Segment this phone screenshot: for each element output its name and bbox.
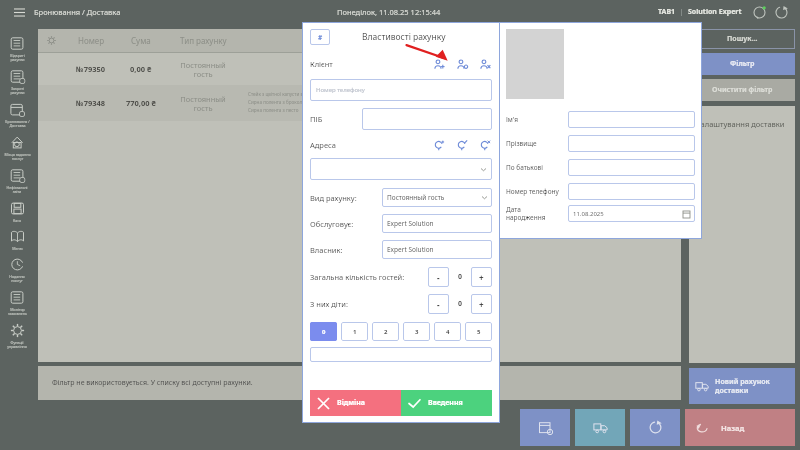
staticText: #	[318, 33, 323, 42]
button[interactable]: Відміна	[310, 390, 401, 416]
button[interactable]: Надання послуг	[0, 254, 34, 287]
button[interactable]: №79348	[38, 85, 681, 121]
staticText: Каса	[13, 218, 21, 223]
staticText: Обслуговує:	[310, 219, 382, 229]
button[interactable]: Очистити фільтр	[689, 79, 795, 101]
button[interactable]: Delivery	[575, 409, 625, 446]
button[interactable]: Menu	[10, 3, 28, 21]
staticText: Стейк з цвітної капусти в кокосовому соу…	[248, 91, 667, 97]
staticText: Введення	[428, 398, 463, 408]
staticText: ПІБ	[310, 114, 362, 124]
button[interactable]: №79350	[38, 53, 681, 85]
button[interactable]: Закриті рахунки	[0, 66, 34, 99]
button[interactable]: Remove address	[479, 139, 492, 152]
staticText: 4	[446, 328, 450, 336]
staticText: Номер	[78, 35, 105, 46]
button[interactable]: Add client	[433, 58, 446, 71]
staticText: Дата народження	[506, 205, 568, 222]
button[interactable]	[310, 158, 492, 180]
button[interactable]	[362, 108, 492, 130]
button[interactable]: Expert Solution	[382, 240, 492, 259]
staticText: Номер телефону	[316, 86, 365, 94]
button[interactable]: Відкриті рахунки	[0, 33, 34, 66]
staticText: -	[437, 272, 440, 283]
button[interactable]: Refresh	[772, 3, 790, 21]
staticText: 0	[322, 328, 326, 336]
staticText: Expert Solution	[387, 219, 434, 228]
button[interactable]: Edit address	[456, 139, 469, 152]
button[interactable]: Монітор замовлень	[0, 287, 34, 320]
staticText: Надання послуг	[9, 274, 25, 284]
button[interactable]: Новий рахунок доставки	[689, 368, 795, 404]
button[interactable]: -	[428, 294, 449, 314]
staticText: 11.08.2025	[573, 210, 604, 218]
button[interactable]: -	[428, 267, 449, 287]
staticText: Новий рахунок доставки	[715, 377, 770, 395]
staticText: +	[479, 272, 484, 283]
staticText: +	[479, 299, 484, 310]
button[interactable]: Бронювання / Доставка	[0, 99, 34, 132]
button[interactable]: Введення	[401, 390, 492, 416]
button[interactable]: Номер телефону	[310, 79, 492, 101]
staticText: Очистити фільтр	[712, 85, 773, 95]
staticText: Сирна полента з броколіні,песто та яйцем…	[248, 99, 667, 105]
staticText: 770,00 ₴	[126, 98, 156, 108]
button[interactable]: Remove client	[479, 58, 492, 71]
staticText: З них діти:	[310, 299, 428, 309]
staticText: По батькові	[506, 163, 568, 172]
button[interactable]: Постоянный гость	[382, 188, 492, 207]
button[interactable]: Пошук...	[689, 29, 795, 49]
button[interactable]: Edit client	[456, 58, 469, 71]
staticText: Понеділок, 11.08.25 12:15:44	[337, 7, 441, 17]
staticText: 0	[458, 272, 463, 282]
button[interactable]: Налаштування доставки	[689, 106, 795, 363]
button[interactable]: Назад	[685, 409, 795, 446]
staticText: Сума	[131, 35, 151, 46]
staticText: Монітор замовлень	[8, 307, 27, 317]
button[interactable]: 5	[465, 322, 492, 341]
button[interactable]: 2	[372, 322, 399, 341]
staticText: Прізвище	[506, 139, 568, 148]
button[interactable]	[568, 159, 695, 176]
button[interactable]	[568, 111, 695, 128]
staticText: Назад	[721, 423, 745, 433]
button[interactable]: +	[471, 267, 492, 287]
staticText: Постоянный гость	[387, 193, 445, 202]
button[interactable]: +	[471, 294, 492, 314]
button[interactable]: Add address	[433, 139, 446, 152]
button[interactable]: 4	[434, 322, 461, 341]
button[interactable]: #	[310, 29, 330, 45]
staticText: Постоянный гость	[180, 60, 226, 79]
staticText: Номер телефону	[506, 187, 568, 196]
staticText: Загальна кількість гостей:	[310, 272, 428, 282]
button[interactable]: 11.08.2025	[568, 205, 695, 222]
staticText: 0	[458, 299, 463, 309]
button[interactable]	[568, 183, 695, 200]
button[interactable]: Refresh	[630, 409, 680, 446]
staticText: №79350	[76, 64, 106, 74]
staticText: 1	[353, 328, 357, 336]
staticText: Фільтр	[730, 59, 755, 69]
button[interactable]	[568, 135, 695, 152]
button[interactable]: 1	[341, 322, 368, 341]
button[interactable]: Schedule	[520, 409, 570, 446]
button[interactable]: 0	[310, 322, 337, 341]
staticText: 2	[384, 328, 388, 336]
button[interactable]: Messages	[750, 3, 768, 21]
button[interactable]: Column settings	[38, 29, 64, 52]
button[interactable]: Місця надання послуг	[0, 132, 34, 165]
button[interactable]: 3	[403, 322, 430, 341]
button[interactable]: Фільтр	[689, 53, 795, 75]
staticText: №79348	[76, 98, 106, 108]
button[interactable]: Меню	[0, 226, 34, 254]
staticText: Відкриті рахунки	[10, 53, 25, 63]
staticText: 5	[477, 328, 481, 336]
button[interactable]: Expert Solution	[382, 214, 492, 233]
button[interactable]: Функції управління	[0, 320, 34, 353]
button[interactable]: Нефіскальні звіти	[0, 165, 34, 198]
button[interactable]: Каса	[0, 198, 34, 226]
button[interactable]	[310, 347, 492, 362]
